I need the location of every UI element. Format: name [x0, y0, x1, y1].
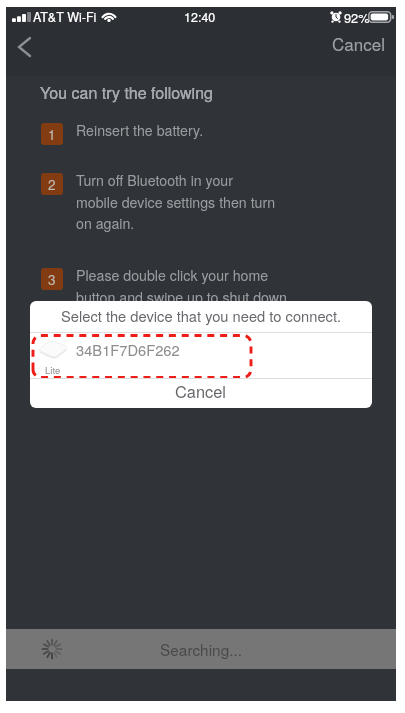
staticText: 12:40 — [184, 8, 216, 26]
staticText: Lite — [45, 363, 61, 377]
staticText: 34B1F7D6F262 — [76, 339, 180, 360]
button[interactable]: Lite — [30, 333, 372, 378]
staticText: You can try the following — [40, 81, 213, 104]
staticText: You can try the following — [40, 81, 213, 104]
staticText: AT&T Wi-Fi — [33, 8, 97, 26]
button[interactable]: Cancel — [317, 23, 396, 63]
staticText: 2 — [48, 175, 56, 194]
staticText: Cancel — [332, 31, 385, 55]
staticText: Searching... — [160, 638, 243, 660]
staticText: Reinsert the battery. — [76, 120, 204, 140]
staticText: 92% — [344, 8, 370, 26]
staticText: Turn off Bluetooth in your mobile device… — [76, 170, 276, 233]
button[interactable]: Back — [8, 29, 52, 76]
button[interactable]: Cancel — [30, 376, 372, 405]
staticText: 1 — [48, 125, 56, 144]
staticText: Cancel — [175, 379, 227, 402]
staticText: 3 — [48, 270, 56, 289]
staticText: Select the device that you need to conne… — [61, 305, 342, 326]
staticText: Please double click your home button and… — [76, 265, 287, 307]
